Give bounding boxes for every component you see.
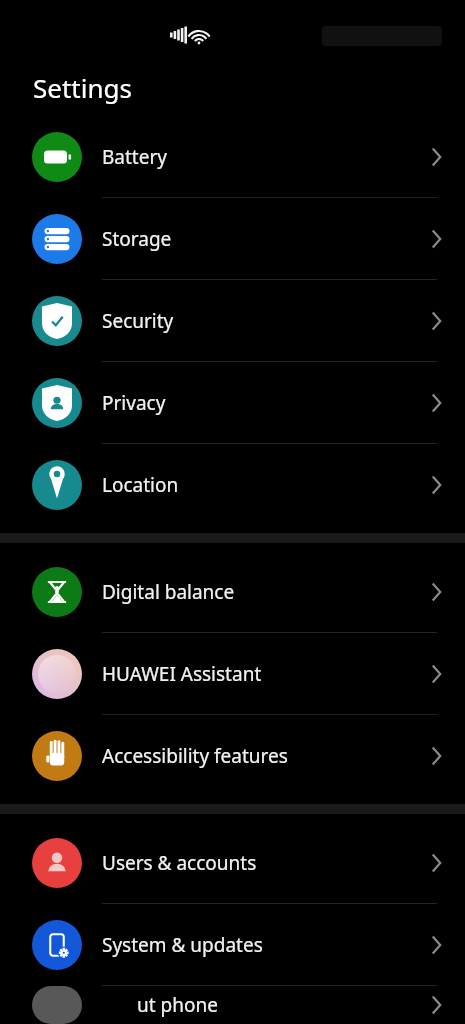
staticText: Storage	[102, 226, 172, 252]
button[interactable]: Security	[0, 280, 465, 361]
button[interactable]: Storage	[0, 198, 465, 279]
other: Users & accounts	[417, 844, 455, 882]
button[interactable]: Users & accounts	[0, 822, 465, 903]
button[interactable]: Accessibility features	[0, 715, 465, 796]
button[interactable]: Digital balance	[0, 551, 465, 632]
staticText: HUAWEI Assistant	[102, 661, 262, 687]
staticText: Privacy	[102, 390, 166, 416]
other: Storage	[417, 220, 455, 258]
button[interactable]: System & updates	[0, 904, 465, 985]
other: System & updates	[417, 926, 455, 964]
other: Battery	[417, 138, 455, 176]
staticText: Location	[102, 472, 179, 498]
other: Digital balance	[417, 573, 455, 611]
other: ut phone	[417, 986, 455, 1024]
staticText: Security	[102, 308, 174, 334]
button[interactable]: Privacy	[0, 362, 465, 443]
other: Accessibility features	[417, 737, 455, 775]
button[interactable]: Location	[0, 444, 465, 525]
button[interactable]: HUAWEI Assistant	[0, 633, 465, 714]
staticText: Accessibility features	[102, 743, 288, 769]
other: Privacy	[417, 384, 455, 422]
other: Location	[417, 466, 455, 504]
staticText: Settings	[33, 70, 132, 105]
other: HUAWEI Assistant	[417, 655, 455, 693]
staticText: ut phone	[137, 992, 218, 1018]
other: Security	[417, 302, 455, 340]
staticText: Battery	[102, 144, 167, 170]
staticText: Users & accounts	[102, 850, 257, 876]
staticText: Digital balance	[102, 579, 235, 605]
button[interactable]: Battery	[0, 116, 465, 197]
button[interactable]: ut phone	[0, 986, 465, 1024]
staticText: System & updates	[102, 932, 263, 958]
